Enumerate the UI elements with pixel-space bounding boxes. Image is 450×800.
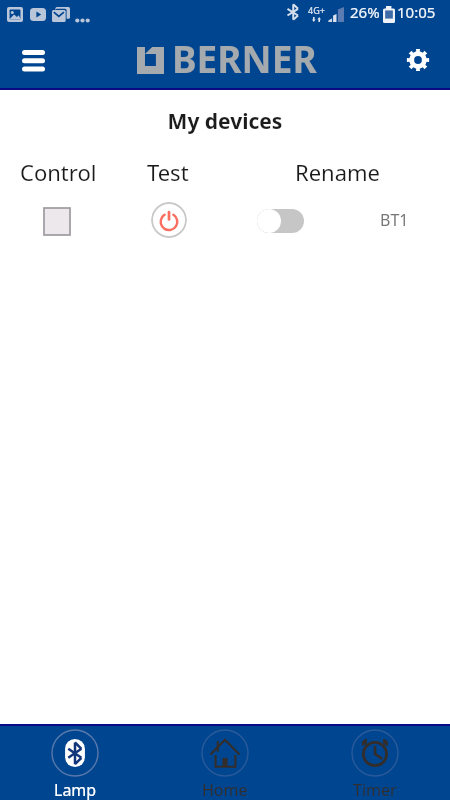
staticText: Lamp xyxy=(54,779,97,800)
button[interactable]: Timer xyxy=(300,726,450,800)
button[interactable]: Menu xyxy=(12,40,54,82)
staticText: BT1 xyxy=(380,209,409,231)
button[interactable]: Test device xyxy=(151,202,187,238)
staticText: BERNER xyxy=(172,33,317,83)
staticText: My devices xyxy=(0,107,450,136)
staticText: 4G+ xyxy=(308,4,325,16)
button[interactable]: Select device xyxy=(44,208,70,235)
button[interactable]: Rename toggle xyxy=(257,209,304,233)
button[interactable]: Settings xyxy=(398,40,438,80)
staticText: Control xyxy=(20,157,97,187)
staticText: Rename xyxy=(295,157,381,187)
button[interactable]: Home xyxy=(150,726,300,800)
staticText: 26% xyxy=(350,2,380,22)
staticText: Test xyxy=(147,157,189,187)
button[interactable]: Lamp xyxy=(0,726,150,800)
staticText: Home xyxy=(202,779,248,800)
staticText: Timer xyxy=(353,779,397,800)
staticText: 10:05 xyxy=(397,2,436,22)
